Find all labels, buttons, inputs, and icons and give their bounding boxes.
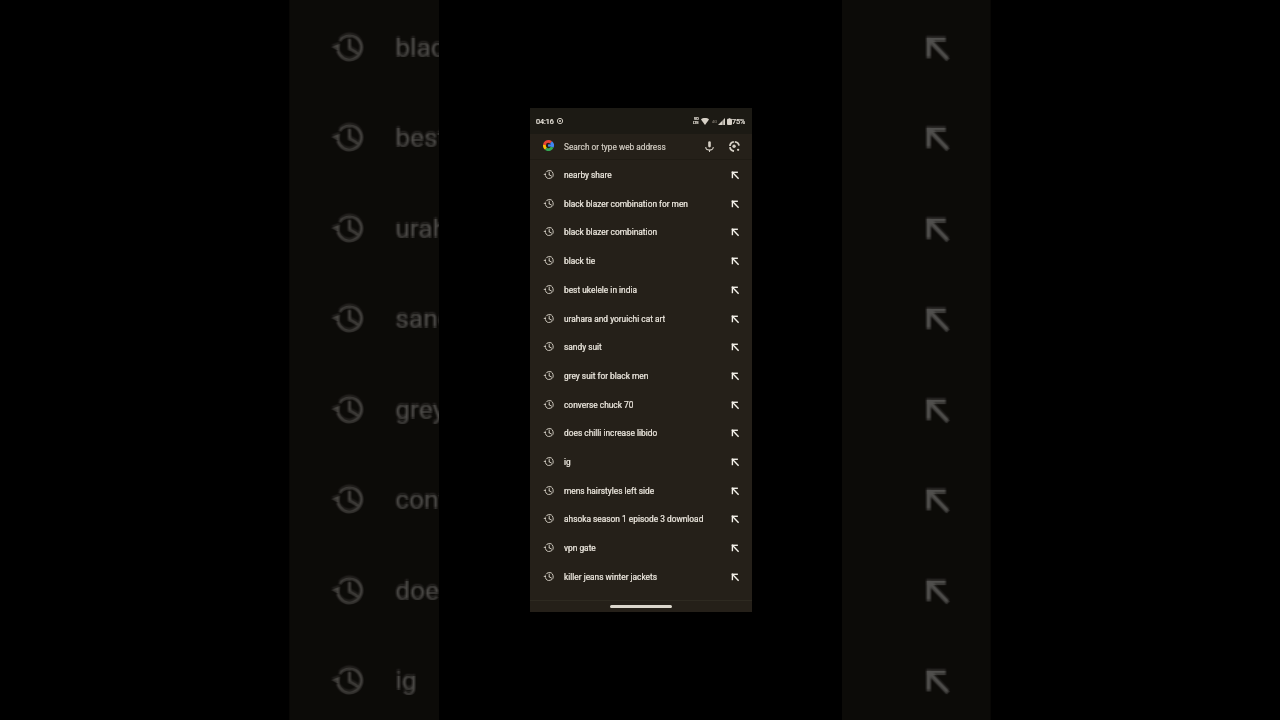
button[interactable]: does chilli increase libido [291,544,991,634]
button[interactable]: ig [289,636,989,720]
button[interactable]: black blazer combination [289,0,989,2]
button[interactable]: Use this query [923,566,948,610]
button[interactable]: converse chuck 70 [289,452,989,542]
button[interactable]: Use this query [731,254,739,268]
button[interactable]: Use this query [924,114,949,158]
button[interactable]: ig [290,634,990,720]
button[interactable]: Use this query [924,297,949,341]
button[interactable]: Use this query [925,205,950,249]
button[interactable]: Use this query [925,385,950,429]
button[interactable]: Use this query [925,297,950,341]
button[interactable]: Use this query [925,24,950,68]
button[interactable]: Use this query [925,475,950,519]
button[interactable]: grey suit for black men [289,362,989,452]
button[interactable]: Use this query [731,455,739,469]
button[interactable]: Use this query [924,385,949,429]
button[interactable]: does chilli increase libido [290,543,990,633]
button[interactable]: Use this query [925,295,950,339]
button[interactable]: ig [530,447,752,476]
button[interactable]: urahara and yoruichi cat art [290,184,990,274]
button[interactable]: Use this query [925,207,950,251]
button[interactable]: Use this query [925,656,950,700]
button[interactable]: Use this query [925,569,950,613]
button[interactable]: grey suit for black men [291,363,991,453]
button[interactable]: Use this query [923,567,948,611]
button[interactable]: Use this query [731,312,739,326]
button[interactable]: grey suit for black men [290,365,990,455]
button[interactable]: urahara and yoruichi cat art [290,182,990,272]
button[interactable]: Use this query [925,657,950,701]
button[interactable]: converse chuck 70 [530,390,752,419]
button[interactable]: Use this query [924,657,949,701]
button[interactable]: black tie [291,3,991,93]
button[interactable]: Use this query [923,388,948,432]
button[interactable]: Use this query [924,388,949,432]
button[interactable]: ig [291,633,991,720]
button[interactable]: urahara and yoruichi cat art [289,184,989,274]
button[interactable]: black tie [291,0,991,90]
button[interactable]: does chilli increase libido [290,544,990,634]
button[interactable]: grey suit for black men [289,363,989,453]
button[interactable]: does chilli increase libido [291,546,991,636]
button[interactable]: black blazer combination [291,0,991,2]
button[interactable]: best ukelele in india [291,90,991,180]
button[interactable]: Use this query [731,283,739,297]
button[interactable]: sandy suit [291,271,991,361]
button[interactable]: sandy suit [289,271,989,361]
button[interactable]: best ukelele in india [291,93,991,183]
button[interactable]: Use this query [925,476,950,520]
button[interactable]: black tie [289,0,989,90]
button[interactable]: does chilli increase libido [290,546,990,636]
button[interactable]: urahara and yoruichi cat art [530,304,752,333]
button[interactable]: Use this query [923,26,948,70]
button[interactable]: nearby share [530,160,752,189]
button[interactable]: vpn gate [530,533,752,562]
button[interactable]: Use this query [923,294,948,338]
button[interactable]: sandy suit [289,272,989,362]
button[interactable]: Use this query [925,566,950,610]
button[interactable]: converse chuck 70 [291,453,991,543]
button[interactable]: converse chuck 70 [291,455,991,545]
button[interactable]: Use this query [731,398,739,412]
button[interactable]: ahsoka season 1 episode 3 download [530,504,752,533]
button[interactable]: best ukelele in india [290,90,990,180]
button[interactable]: black blazer combination [290,0,990,2]
button[interactable]: Use this query [923,113,948,157]
button[interactable]: ig [289,633,989,720]
button[interactable]: black blazer combination [530,217,752,246]
button[interactable]: Use this query [925,114,950,158]
button[interactable]: ig [290,633,990,720]
button[interactable]: Use this query [924,205,949,249]
button[interactable]: sandy suit [290,271,990,361]
button[interactable]: Use this query [923,24,948,68]
button[interactable]: Use this query [925,204,950,248]
button[interactable]: converse chuck 70 [290,453,990,543]
button[interactable]: Use this query [925,294,950,338]
button[interactable]: Use this query [731,570,739,584]
button[interactable]: killer jeans winter jackets [530,562,752,591]
button[interactable]: Use this query [731,225,739,239]
button[interactable]: Use this query [923,207,948,251]
button[interactable]: Use this query [924,295,949,339]
button[interactable]: does chilli increase libido [291,543,991,633]
button[interactable]: grey suit for black men [289,365,989,455]
button[interactable]: grey suit for black men [290,362,990,452]
button[interactable]: Use this query [924,23,949,67]
button[interactable]: ig [290,636,990,720]
button[interactable]: sandy suit [291,274,991,364]
button[interactable]: best ukelele in india [291,91,991,181]
button[interactable]: mens hairstyles left side [530,476,752,505]
button[interactable]: black tie [289,3,989,93]
button[interactable]: black tie [530,246,752,275]
button[interactable]: sandy suit [530,332,752,361]
button[interactable]: black blazer combination for men [530,189,752,218]
button[interactable]: urahara and yoruichi cat art [289,182,989,272]
button[interactable]: Use this query [924,116,949,160]
button[interactable]: Use this query [924,207,949,251]
button[interactable]: black tie [291,1,991,91]
button[interactable]: Use this query [731,369,739,383]
button[interactable]: urahara and yoruichi cat art [289,181,989,271]
button[interactable]: Use this query [731,541,739,555]
button[interactable]: Use this query [923,475,948,519]
button[interactable]: urahara and yoruichi cat art [291,184,991,274]
